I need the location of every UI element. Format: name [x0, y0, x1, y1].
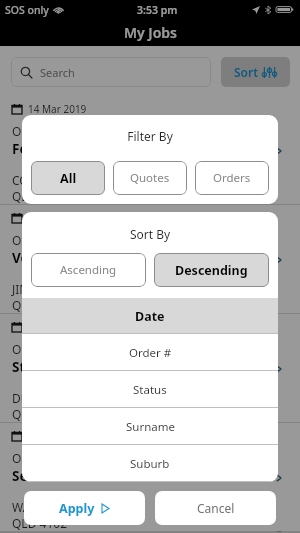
- staticText: All: [60, 170, 77, 187]
- staticText: JIM SMITH: [12, 281, 71, 297]
- staticText: Suburb: [130, 456, 170, 472]
- staticText: QLD 4017: [12, 406, 67, 422]
- staticText: Surname: [126, 419, 175, 435]
- staticText: Descending: [175, 262, 248, 279]
- staticText: Apply: [59, 500, 95, 517]
- staticText: Order #18823: [12, 341, 91, 357]
- staticText: Order #18823: [12, 232, 91, 248]
- staticText: Search: [40, 65, 75, 80]
- button[interactable]: Order #: [22, 334, 278, 371]
- button[interactable]: Surname: [22, 408, 278, 445]
- button[interactable]: 14 Mar 2019: [0, 314, 300, 423]
- button[interactable]: Ascending: [31, 253, 146, 287]
- staticText: Seaside Traders: [12, 467, 117, 485]
- staticText: DUNCAN ROAD: [12, 390, 100, 406]
- staticText: Vertex Holdings: [12, 249, 120, 267]
- staticText: ENTERED: [229, 175, 274, 189]
- button[interactable]: Suburb: [22, 445, 278, 482]
- button[interactable]: Status: [22, 371, 278, 408]
- staticText: Cancel: [197, 500, 235, 516]
- staticText: Quotes: [130, 170, 170, 186]
- button[interactable]: Apply: [24, 491, 145, 525]
- staticText: Ascending: [60, 262, 117, 278]
- staticText: 14 Mar 2019: [28, 102, 87, 116]
- staticText: Status: [133, 382, 167, 398]
- button[interactable]: Cancel: [155, 491, 276, 525]
- staticText: QLD 4102: [12, 515, 67, 531]
- staticText: Sort: [234, 64, 259, 80]
- staticText: WARD STREET: [12, 499, 91, 515]
- staticText: Order #: [129, 345, 172, 361]
- staticText: CORNER STORE: [12, 172, 100, 188]
- staticText: Forrest Hill Pty: [12, 140, 112, 158]
- staticText: Sort By: [22, 226, 278, 242]
- button[interactable]: 14 Mar 2019: [0, 96, 300, 205]
- staticText: 14 Mar 2019: [28, 320, 87, 334]
- staticText: Orders: [213, 170, 251, 186]
- staticText: Filter By: [22, 128, 278, 144]
- button[interactable]: All: [31, 161, 105, 195]
- staticText: QLD 4000: [12, 188, 67, 204]
- button[interactable]: 14 Mar 2019: [0, 205, 300, 314]
- staticText: My Jobs: [124, 23, 177, 42]
- staticText: Date: [135, 308, 165, 325]
- staticText: ENTERED: [229, 502, 274, 516]
- staticText: Order #18823: [12, 450, 91, 466]
- staticText: Order #18823: [12, 123, 91, 139]
- button[interactable]: 14 Mar 2019: [0, 423, 300, 532]
- staticText: 3:53 pm: [137, 3, 178, 17]
- button[interactable]: Orders: [195, 161, 269, 195]
- button[interactable]: Search: [11, 57, 211, 87]
- button[interactable]: Sort: [221, 57, 290, 87]
- staticText: 14 Mar 2019: [28, 211, 87, 225]
- staticText: QLD 4215: [12, 297, 67, 313]
- button[interactable]: Quotes: [113, 161, 187, 195]
- button[interactable]: Date: [22, 298, 278, 334]
- staticText: Stanley Works: [12, 358, 108, 376]
- staticText: ENTERED: [229, 284, 274, 298]
- button[interactable]: Descending: [154, 253, 269, 287]
- staticText: SOS only: [5, 3, 49, 17]
